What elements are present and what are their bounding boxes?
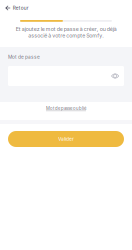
staticText: Et ajoutez le mot de passe à créer, ou d… — [15, 26, 116, 39]
button[interactable]: Afficher le mot de passe — [111, 73, 124, 79]
staticText: Mot de passe — [8, 54, 40, 60]
staticText: Mot de passe oublié — [46, 106, 86, 111]
button[interactable]: Valider — [8, 131, 124, 147]
button[interactable]: Retour — [0, 0, 132, 16]
button[interactable]: Mot de passe oublié — [0, 103, 132, 114]
staticText: Valider — [58, 136, 74, 142]
staticText: Retour — [13, 5, 29, 11]
